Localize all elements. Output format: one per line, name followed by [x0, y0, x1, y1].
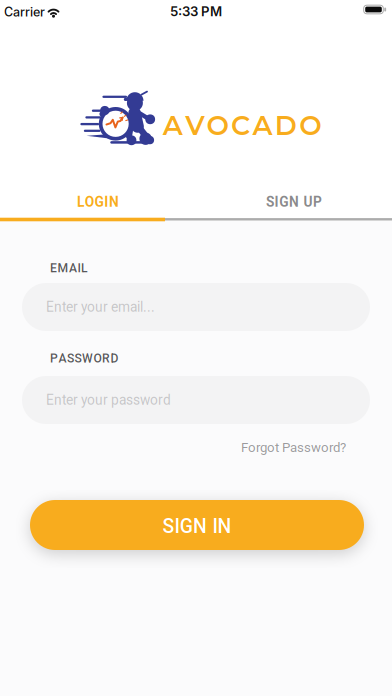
staticText: I [104, 194, 108, 210]
staticText: R [102, 351, 110, 365]
button[interactable]: S [196, 182, 392, 222]
staticText: O [93, 351, 101, 365]
staticText: I [175, 515, 180, 538]
staticText: G [180, 515, 193, 538]
staticText: I [212, 515, 217, 538]
staticText: O [207, 109, 229, 142]
staticText: A [163, 109, 183, 142]
staticText: S [67, 351, 74, 365]
staticText: P [50, 351, 58, 365]
staticText: N [289, 194, 299, 210]
staticText: G [94, 194, 103, 210]
staticText: P [313, 194, 322, 210]
staticText: 5:33 PM [170, 3, 222, 19]
button[interactable]: L [0, 182, 196, 222]
button[interactable]: S [30, 500, 364, 550]
staticText: W [82, 351, 93, 365]
staticText: N [109, 194, 119, 210]
staticText: L [77, 194, 84, 210]
staticText: U [303, 194, 312, 210]
staticText: D [110, 351, 118, 365]
button[interactable]: Enter your password [22, 376, 370, 424]
staticText: I [77, 261, 80, 275]
staticText: S [266, 194, 274, 210]
staticText: A [58, 351, 66, 365]
staticText: S [162, 515, 174, 538]
staticText: V [185, 109, 204, 142]
staticText: A [252, 109, 272, 142]
staticText: L [81, 261, 88, 275]
staticText: M [57, 261, 68, 275]
button[interactable]: Forgot Password? [241, 440, 346, 455]
button[interactable]: Enter your email... [22, 283, 370, 331]
staticText: D [275, 109, 297, 142]
staticText: Enter your email... [46, 299, 155, 315]
staticText: C [231, 109, 250, 142]
staticText: Forgot Password? [241, 440, 346, 455]
staticText: N [193, 515, 207, 538]
staticText: I [275, 194, 279, 210]
staticText: S [74, 351, 81, 365]
staticText: N [218, 515, 232, 538]
staticText: Enter your password [46, 392, 171, 408]
staticText: A [69, 261, 77, 275]
staticText: E [50, 261, 57, 275]
staticText: O [85, 194, 94, 210]
staticText: O [299, 109, 321, 142]
staticText: Carrier [4, 4, 45, 20]
staticText: G [279, 194, 288, 210]
